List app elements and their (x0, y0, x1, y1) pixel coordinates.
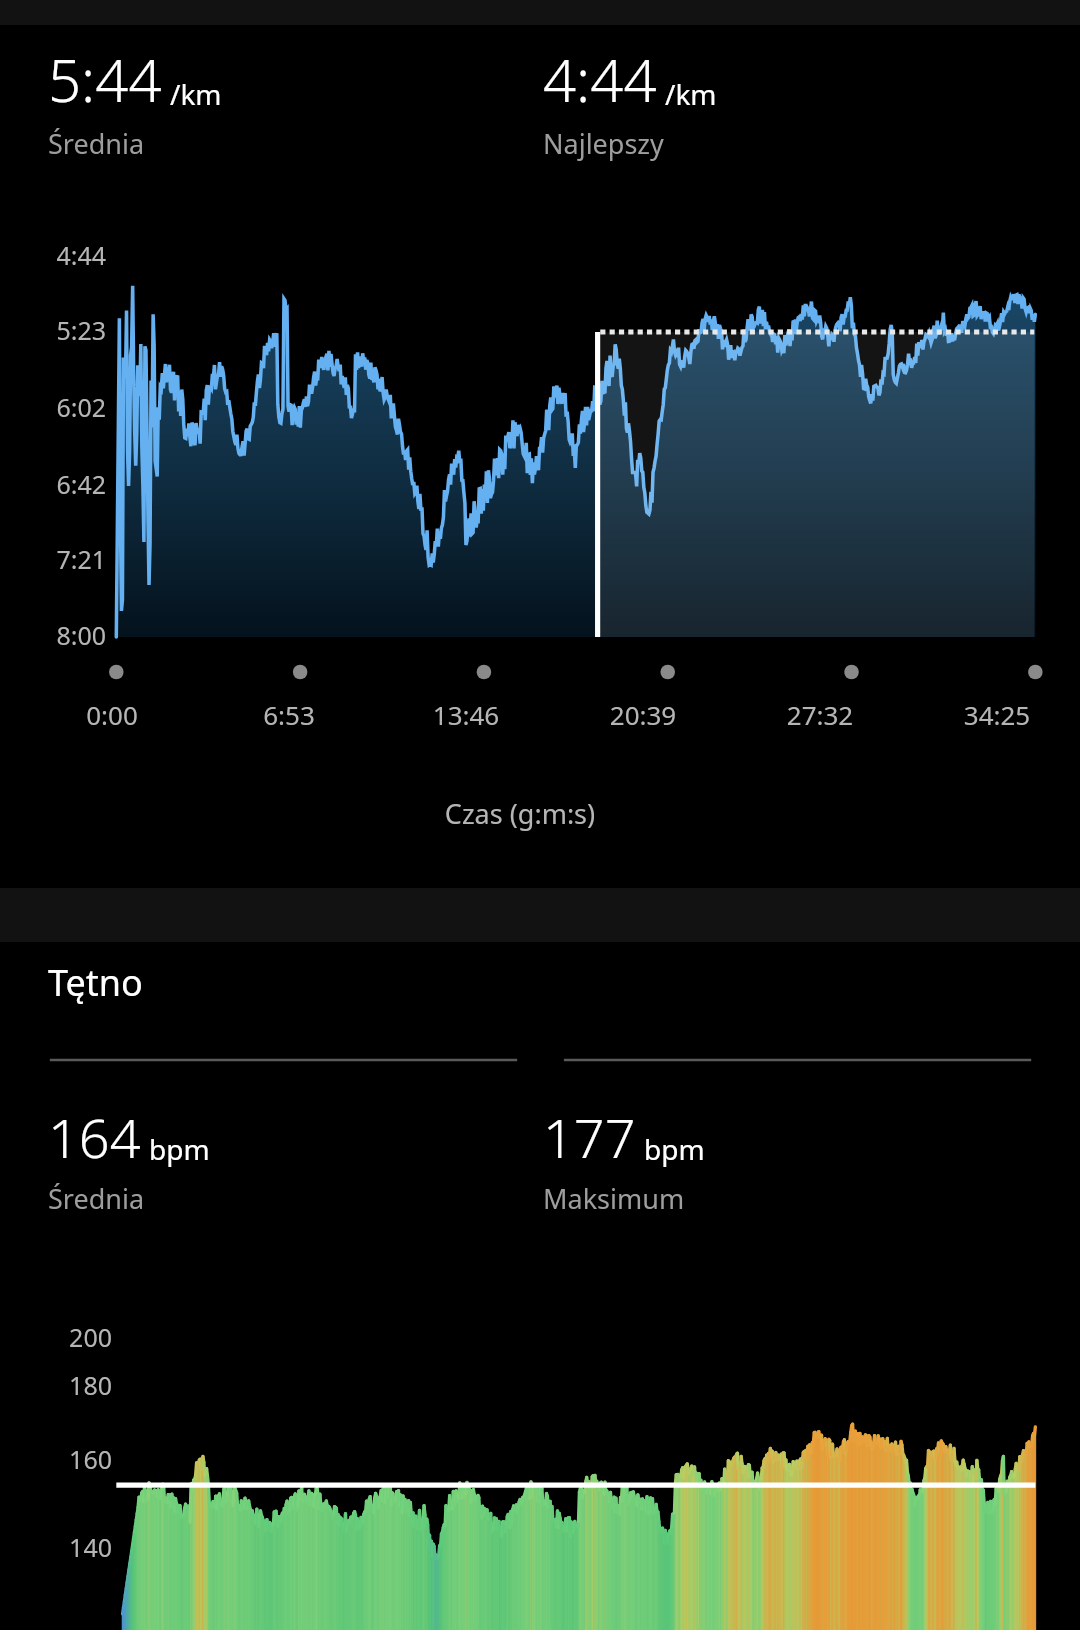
staticText: Średnia (48, 1180, 145, 1217)
button[interactable]: Tętno (48, 958, 143, 1007)
staticText: Średnia (48, 125, 145, 162)
staticText: 5:44 (48, 40, 162, 119)
staticText: 20:39 (588, 697, 698, 732)
staticText: /km (170, 75, 222, 113)
staticText: bpm (644, 1130, 705, 1168)
staticText: 27:32 (765, 697, 875, 732)
staticText: bpm (149, 1130, 210, 1168)
staticText: /km (665, 75, 717, 113)
staticText: 6:42 (42, 467, 106, 501)
staticText: 6:02 (42, 390, 106, 424)
staticText: 200 (42, 1320, 112, 1354)
staticText: 0:00 (57, 697, 167, 732)
button[interactable]: 5:44 (48, 40, 222, 162)
button[interactable]: 4:44 (543, 40, 717, 162)
staticText: Maksimum (543, 1180, 685, 1217)
staticText: 6:53 (234, 697, 344, 732)
button[interactable]: 164 (48, 1100, 210, 1217)
staticText: 7:21 (42, 542, 106, 576)
staticText: Najlepszy (543, 125, 664, 162)
staticText: Tętno (48, 958, 143, 1007)
staticText: 4:44 (543, 40, 657, 119)
staticText: 164 (48, 1100, 141, 1174)
staticText: 177 (543, 1100, 636, 1174)
button[interactable]: 177 (543, 1100, 705, 1217)
staticText: 8:00 (42, 618, 106, 652)
staticText: Czas (g:m:s) (370, 795, 670, 832)
staticText: 5:23 (42, 313, 106, 347)
staticText: 160 (42, 1442, 112, 1476)
staticText: 180 (42, 1368, 112, 1402)
staticText: 13:46 (411, 697, 521, 732)
staticText: 140 (42, 1530, 112, 1564)
staticText: 4:44 (42, 238, 106, 272)
staticText: 34:25 (942, 697, 1052, 732)
